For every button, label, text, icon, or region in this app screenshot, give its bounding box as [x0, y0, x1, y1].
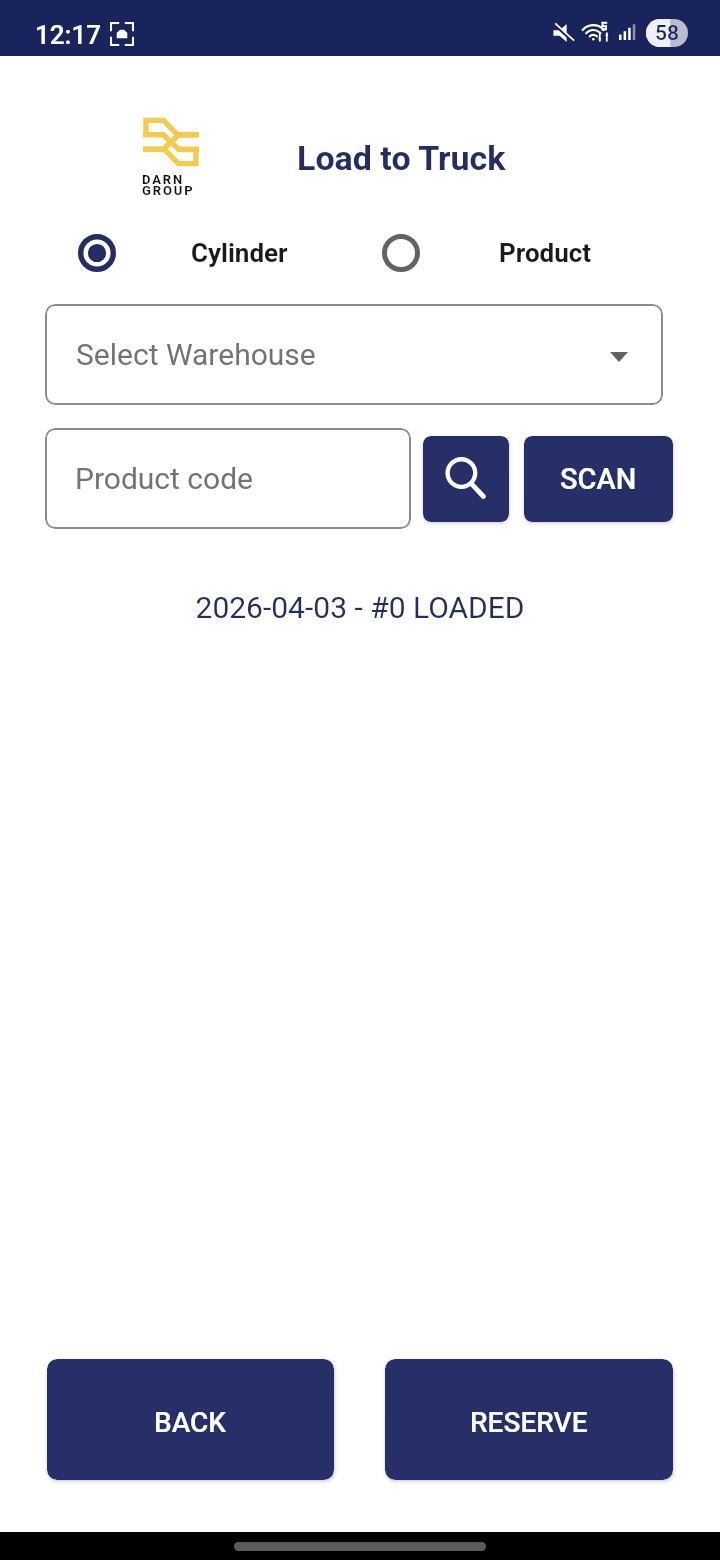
staticText: Product	[499, 238, 592, 268]
staticText: SCAN	[560, 462, 637, 496]
staticText: Cylinder	[191, 238, 288, 268]
button[interactable]: SCAN	[524, 436, 673, 522]
button[interactable]: Product	[373, 225, 592, 281]
button[interactable]: Cylinder	[69, 225, 288, 281]
staticText: BACK	[154, 1406, 227, 1439]
staticText: Product code	[75, 461, 253, 496]
staticText: 12:17	[35, 20, 101, 50]
staticText: Select Warehouse	[76, 337, 316, 372]
staticText: RESERVE	[470, 1406, 588, 1439]
staticText: 58	[655, 21, 679, 46]
staticText: 2026-04-03 - #0 LOADED	[0, 590, 720, 625]
button[interactable]: Search	[423, 436, 509, 522]
button[interactable]: BACK	[47, 1359, 334, 1480]
staticText: DARN GROUP	[142, 172, 195, 198]
button[interactable]: RESERVE	[385, 1359, 673, 1480]
button[interactable]: Product code	[45, 428, 411, 529]
staticText: Load to Truck	[297, 138, 506, 178]
button[interactable]: Select Warehouse	[45, 304, 663, 405]
